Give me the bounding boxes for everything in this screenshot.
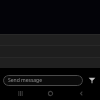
button[interactable]: Send	[83, 73, 100, 87]
button[interactable]: Send message	[3, 75, 83, 86]
staticText: Send message	[8, 77, 43, 84]
button[interactable]: Recent apps	[9, 87, 31, 100]
button[interactable]: Home	[39, 87, 61, 100]
button[interactable]: Back	[70, 87, 92, 100]
